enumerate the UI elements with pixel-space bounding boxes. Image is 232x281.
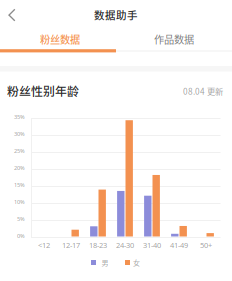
staticText: 作品数据 <box>154 32 194 46</box>
staticText: 50+ <box>200 240 212 250</box>
staticText: 18-23 <box>89 240 107 250</box>
staticText: 24-30 <box>116 240 134 250</box>
staticText: 30% <box>14 130 25 138</box>
staticText: 35% <box>14 113 25 121</box>
staticText: 41-49 <box>170 240 188 250</box>
staticText: <12 <box>38 240 50 250</box>
staticText: 粉丝性别年龄 <box>7 82 79 99</box>
staticText: 男 <box>102 257 109 268</box>
button[interactable]: 作品数据 <box>116 29 232 49</box>
staticText: 女 <box>133 257 140 268</box>
staticText: 粉丝数据 <box>40 32 80 46</box>
staticText: 10% <box>14 198 25 206</box>
staticText: 31-40 <box>143 240 161 250</box>
staticText: 5% <box>17 215 25 223</box>
staticText: 0% <box>17 232 25 240</box>
button[interactable]: Back <box>0 0 26 28</box>
staticText: 数据助手 <box>94 7 138 22</box>
staticText: 15% <box>14 181 25 189</box>
staticText: 08.04 更新 <box>183 85 223 97</box>
staticText: 12-17 <box>62 240 80 250</box>
button[interactable]: 粉丝数据 <box>2 29 118 49</box>
staticText: 20% <box>14 164 25 172</box>
staticText: 25% <box>14 147 25 155</box>
